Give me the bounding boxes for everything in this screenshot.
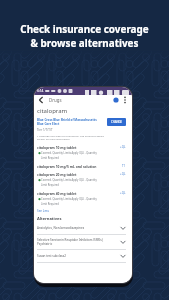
staticText: Alternatives <box>37 216 62 221</box>
staticText: T1 <box>122 164 126 168</box>
button[interactable]: citalopram 10 mg/5 mL oral solution <box>37 162 126 170</box>
staticText: citalopram <box>37 107 68 115</box>
staticText: citalopram 20 mg tablet <box>37 172 120 176</box>
staticText: Covered. Quantity Limits Apply (QL) - Qu… <box>41 151 97 160</box>
staticText: Selective Serotonin Reuptake Inhibitors … <box>37 238 120 246</box>
staticText: Blue Care Elect <box>37 122 60 126</box>
staticText: +QL <box>120 191 126 195</box>
staticText: Anxiolytics, Non-benzodiazepines <box>37 226 120 230</box>
staticText: +QL <box>120 145 126 149</box>
staticText: Covered. Quantity Limits Apply (QL) - Qu… <box>41 178 97 187</box>
staticText: CHANGE <box>111 120 122 124</box>
staticText: Check insurance coverage & browse altern… <box>0 22 169 50</box>
button[interactable]: Anxiolytics, Non-benzodiazepines <box>37 222 126 235</box>
staticText: Drugs <box>49 97 62 103</box>
staticText: 5:14 <box>37 89 44 93</box>
button[interactable]: More options <box>121 96 129 104</box>
staticText: Tier 1/T/T/T <box>37 128 53 132</box>
staticText: citalopram 10 mg/5 mL oral solution <box>37 164 122 168</box>
button[interactable]: Susan test subclass2 <box>37 250 126 263</box>
button[interactable]: citalopram 10 mg tablet <box>37 143 126 162</box>
staticText: Covered. Quantity Limits Apply (QL) - Qu… <box>41 197 97 206</box>
staticText: citalopram 40 mg tablet <box>37 191 120 195</box>
staticText: citalopram 10 mg tablet <box>37 145 120 149</box>
staticText: Susan test subclass2 <box>37 254 120 258</box>
staticText: * Coverage may differ by formulation. Se… <box>37 134 104 140</box>
button[interactable]: Selective Serotonin Reuptake Inhibitors … <box>37 235 126 250</box>
button[interactable]: citalopram 20 mg tablet <box>37 170 126 189</box>
button[interactable]: Back <box>37 96 45 104</box>
button[interactable]: See Less <box>37 209 49 213</box>
button[interactable]: citalopram 40 mg tablet <box>37 189 126 208</box>
button[interactable]: Info <box>112 96 120 104</box>
button[interactable]: CHANGE <box>107 118 126 126</box>
staticText: Blue Cross Blue Shield of Massachusetts <box>37 118 97 122</box>
staticText: +QL <box>120 172 126 176</box>
